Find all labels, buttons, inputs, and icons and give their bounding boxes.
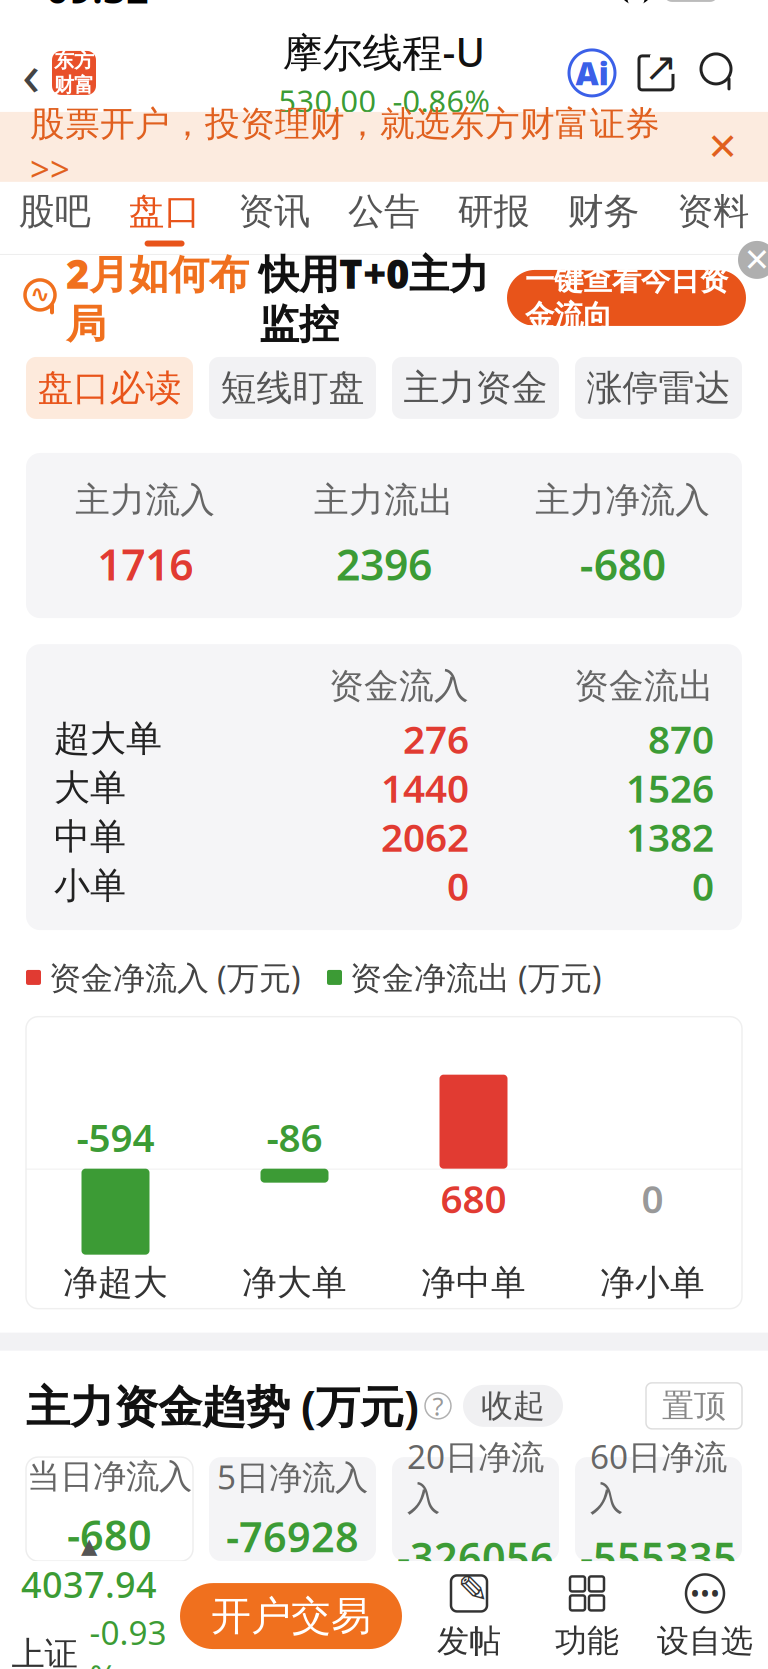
button[interactable]: 20日净流入 <box>392 1457 559 1561</box>
button[interactable]: 返回 <box>0 35 104 111</box>
staticText: -680 <box>580 535 666 592</box>
staticText: 置顶 <box>662 1386 726 1425</box>
staticText: 1526 <box>626 762 714 813</box>
staticText: 研报 <box>458 189 530 233</box>
staticText: 资讯 <box>238 189 310 233</box>
staticText: -0.93% <box>89 1610 166 1669</box>
button[interactable]: 短线盯盘 <box>209 357 376 419</box>
staticText: 2月如何布局 <box>66 247 249 349</box>
staticText: ✕ <box>743 242 768 278</box>
staticText: 净超大 <box>63 1261 168 1304</box>
button[interactable]: ••• <box>646 1567 764 1665</box>
staticText: 870 <box>648 713 714 764</box>
staticText: 盘口 <box>129 189 201 233</box>
button[interactable]: 研报 <box>439 182 549 254</box>
button[interactable]: 资讯 <box>219 182 329 254</box>
staticText: 净大单 <box>242 1261 347 1304</box>
button[interactable]: 置顶 <box>646 1383 742 1429</box>
staticText: -594 <box>76 1111 154 1163</box>
staticText: 09:32 <box>46 0 149 14</box>
staticText: 资金流出 <box>574 665 714 707</box>
staticText: 发帖 <box>437 1621 501 1661</box>
staticText: 资金净流入 (万元) <box>49 956 301 999</box>
staticText: 股票开户，投资理财，就选东方财富证券>> <box>30 103 660 191</box>
button[interactable]: 财务 <box>549 182 658 254</box>
staticText: 小单 <box>54 863 126 908</box>
staticText: 超大单 <box>54 716 162 761</box>
button[interactable]: 搜索 <box>688 38 768 108</box>
staticText: 资料 <box>677 189 749 233</box>
button[interactable]: ✎ <box>410 1567 528 1665</box>
staticText: 上证 <box>11 1634 77 1669</box>
staticText: -555335 <box>580 1529 737 1584</box>
staticText: 功能 <box>555 1621 619 1661</box>
staticText: 1440 <box>381 762 469 813</box>
button[interactable]: 股票开户，投资理财，就选东方财富证券>> <box>0 112 768 182</box>
staticText: 资金流入 <box>329 665 469 707</box>
staticText: 开户交易 <box>211 1591 371 1641</box>
button[interactable]: 盘口 <box>110 182 219 254</box>
staticText: 20日净流入 <box>407 1434 544 1519</box>
staticText: 摩尔线程-U <box>282 25 485 78</box>
staticText: 设自选 <box>657 1621 753 1661</box>
button[interactable]: 功能 <box>528 1567 646 1665</box>
staticText: 1382 <box>626 811 714 862</box>
staticText: 0 <box>641 1173 663 1224</box>
staticText: 中单 <box>54 814 126 859</box>
staticText: Ai <box>575 52 608 94</box>
staticText: 短线盯盘 <box>220 366 364 410</box>
button[interactable]: 收起 <box>463 1385 563 1427</box>
button[interactable]: 盘口必读 <box>26 357 193 419</box>
button[interactable]: 当日净流入 <box>26 1457 193 1561</box>
staticText: 一键查看今日资金流向 <box>525 262 728 334</box>
button[interactable]: ▲ <box>4 1563 174 1669</box>
staticText: 0 <box>447 860 469 911</box>
staticText: 盘口必读 <box>37 366 181 410</box>
staticText: 276 <box>403 713 469 764</box>
button[interactable]: ∿ <box>0 255 768 341</box>
staticText: 财富 <box>54 73 94 97</box>
staticText: -680 <box>67 1507 152 1562</box>
button[interactable]: 开户交易 <box>180 1583 402 1649</box>
staticText: 530.00 -0.86% <box>278 80 489 121</box>
staticText: 快用T+0主力监控 <box>259 247 489 349</box>
button[interactable]: 涨停雷达 <box>575 357 742 419</box>
button[interactable]: 股吧 <box>0 182 110 254</box>
staticText: 1716 <box>97 535 193 592</box>
button[interactable]: 分享 <box>624 38 688 108</box>
staticText: ••• <box>690 1576 720 1611</box>
staticText: ▲ <box>81 1534 97 1558</box>
staticText: 4037.94 <box>21 1560 157 1608</box>
staticText: 60日净流入 <box>590 1434 727 1519</box>
staticText: 5日净流入 <box>217 1454 368 1499</box>
staticText: ✎ <box>457 1568 488 1611</box>
staticText: 资金净流出 (万元) <box>350 956 602 999</box>
staticText: 2396 <box>336 535 432 592</box>
staticText: 财务 <box>567 189 639 233</box>
button[interactable]: 主力资金 <box>392 357 559 419</box>
staticText: 2062 <box>381 811 469 862</box>
button[interactable]: 说明 <box>419 1387 457 1425</box>
staticText: ? <box>432 1389 443 1423</box>
staticText: 当日净流入 <box>27 1456 192 1497</box>
button[interactable]: 5日净流入 <box>209 1457 376 1561</box>
staticText: 大单 <box>54 765 126 810</box>
staticText: 主力净流入 <box>535 479 710 521</box>
staticText: 主力资金 <box>403 366 547 410</box>
staticText: ‹ <box>22 34 40 112</box>
staticText: -326056 <box>397 1529 554 1584</box>
button[interactable]: 资料 <box>658 182 768 254</box>
button[interactable]: 公告 <box>329 182 439 254</box>
staticText: 680 <box>440 1173 506 1224</box>
button[interactable]: AI 助手 <box>560 38 624 108</box>
staticText: -86 <box>266 1111 322 1163</box>
staticText: 股吧 <box>19 189 91 233</box>
staticText: 主力资金趋势 (万元) <box>26 1377 419 1435</box>
button[interactable]: 关闭广告 <box>738 241 768 279</box>
staticText: 主力流出 <box>314 479 454 521</box>
staticText: ∿ <box>30 280 50 307</box>
staticText: 0 <box>692 860 714 911</box>
staticText: 涨停雷达 <box>586 366 730 410</box>
button[interactable]: 60日净流入 <box>575 1457 742 1561</box>
staticText: ↗ <box>644 44 678 90</box>
